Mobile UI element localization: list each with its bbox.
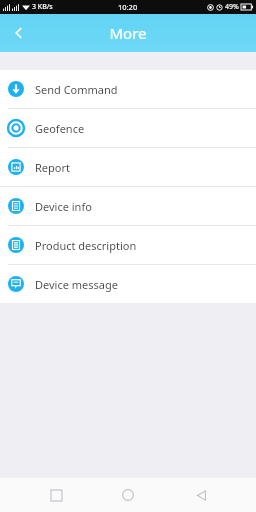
button[interactable]: Send Command [0,70,256,108]
button[interactable]: Geofence [0,109,256,147]
staticText: Report [35,160,70,175]
staticText: Product description [35,238,137,253]
staticText: Device info [35,199,92,214]
staticText: 49% [225,2,239,12]
staticText: Device message [35,277,118,292]
staticText: Geofence [35,121,85,136]
staticText: 3 KB/s [32,2,53,12]
staticText: Send Command [35,82,118,97]
staticText: More [109,23,147,43]
button[interactable]: Recents [39,478,73,512]
button[interactable]: Home [111,478,145,512]
button[interactable]: Back [0,14,38,52]
button[interactable]: Device message [0,265,256,303]
staticText: 10:20 [118,2,138,12]
button[interactable]: Back [184,478,218,512]
button[interactable]: Device info [0,187,256,225]
button[interactable]: Product description [0,226,256,264]
button[interactable]: Report [0,148,256,186]
